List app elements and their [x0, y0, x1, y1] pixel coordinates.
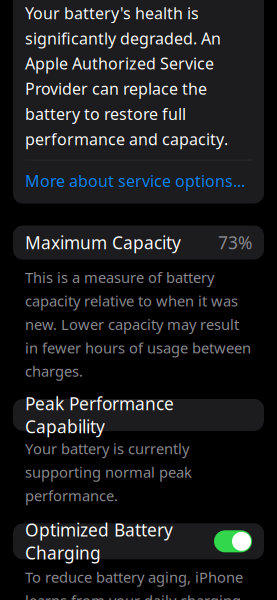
- staticText: Your battery's health is significantly d…: [25, 2, 228, 150]
- staticText: Optimized Battery Charging: [25, 518, 173, 564]
- button[interactable]: More about service options...: [25, 170, 252, 191]
- staticText: This is a measure of battery capacity re…: [25, 267, 251, 381]
- button[interactable]: Maximum Capacity: [13, 225, 264, 259]
- button[interactable]: Peak Performance Capability: [13, 399, 264, 431]
- button[interactable]: Optimized Battery Charging: [13, 523, 264, 559]
- staticText: Maximum Capacity: [25, 231, 181, 254]
- staticText: 73%: [218, 231, 252, 254]
- staticText: Peak Performance Capability: [25, 392, 174, 438]
- staticText: Your battery is currently supporting nor…: [25, 439, 192, 505]
- staticText: More about service options...: [25, 170, 245, 191]
- staticText: To reduce battery aging, iPhone learns f…: [25, 567, 243, 600]
